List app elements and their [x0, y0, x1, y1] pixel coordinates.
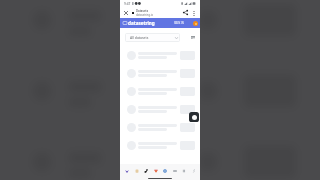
staticText: 9:47 [124, 2, 131, 6]
button[interactable]: Account [193, 21, 198, 26]
staticText: Datasets [136, 9, 149, 13]
button[interactable] [120, 136, 200, 154]
button[interactable]: Yahoo Mail [123, 167, 130, 174]
button[interactable]: Stop recording [189, 112, 199, 122]
button[interactable]: Share [181, 8, 190, 17]
button[interactable]: Files [133, 167, 140, 174]
button[interactable]: Shopping [152, 167, 159, 174]
button[interactable]: Recents [180, 167, 187, 174]
button[interactable]: Chrome [161, 167, 168, 174]
staticText: datasetring [128, 20, 155, 26]
button[interactable] [120, 100, 200, 118]
button[interactable]: List view [188, 33, 197, 42]
button[interactable] [120, 46, 200, 64]
staticText: All datasets [130, 35, 149, 40]
staticText: SIGN IN [174, 21, 184, 25]
button[interactable]: Back [171, 167, 178, 174]
button[interactable]: All datasets [125, 33, 180, 42]
button[interactable]: Home [190, 167, 197, 174]
button[interactable]: More options [190, 9, 198, 17]
button[interactable] [120, 118, 200, 136]
button[interactable] [120, 64, 200, 82]
button[interactable]: Close [122, 9, 130, 17]
button[interactable]: SIGN IN [173, 21, 185, 25]
button[interactable]: TikTok [142, 167, 149, 174]
button[interactable] [120, 82, 200, 100]
staticText: datasetring.io [136, 13, 153, 17]
